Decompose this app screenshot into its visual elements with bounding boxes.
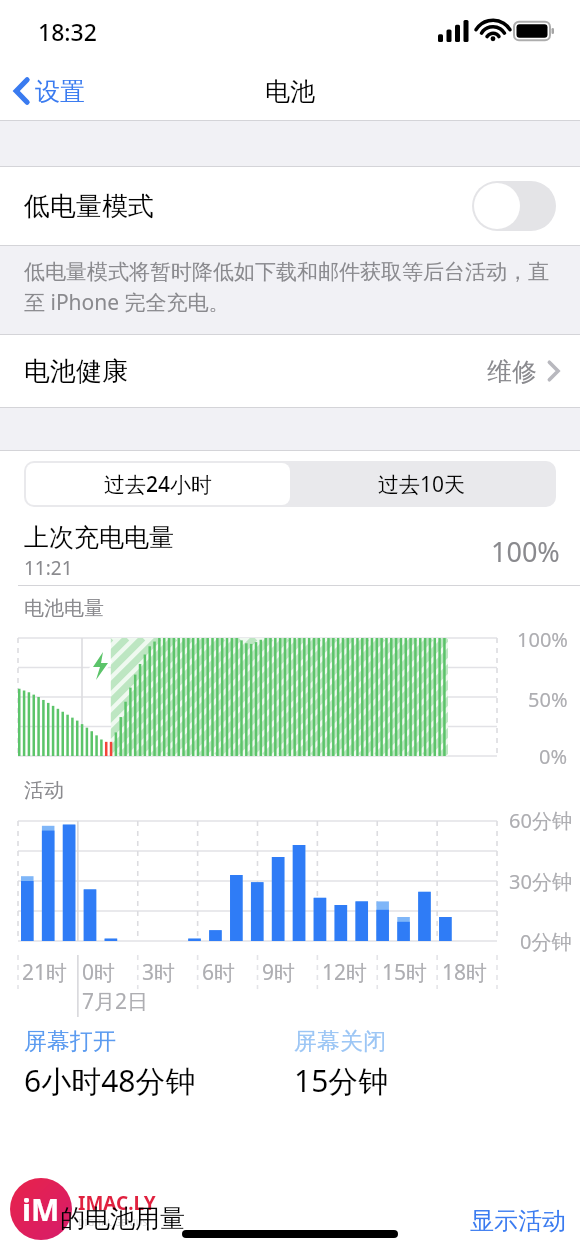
staticText: 电池健康 bbox=[24, 355, 128, 388]
staticText: 活动 bbox=[24, 778, 64, 803]
staticText: 6时 bbox=[202, 958, 236, 987]
staticText: 0分钟 bbox=[520, 928, 572, 955]
staticText: 的电池用量 bbox=[60, 1203, 185, 1234]
staticText: 3时 bbox=[142, 958, 176, 987]
staticText: 30分钟 bbox=[509, 868, 572, 895]
button[interactable]: 电池健康 bbox=[0, 335, 580, 407]
staticText: 电池电量 bbox=[24, 596, 104, 621]
staticText: 0时 bbox=[82, 958, 116, 987]
staticText: 15时 bbox=[382, 958, 428, 987]
staticText: 7月2日 bbox=[82, 987, 149, 1016]
staticText: 显示活动 bbox=[470, 1206, 566, 1236]
staticText: IMAC.LY bbox=[78, 1190, 156, 1216]
button[interactable]: 过去10天 bbox=[290, 463, 554, 505]
staticText: iM bbox=[22, 1189, 60, 1230]
staticText: 上次充电电量 bbox=[24, 522, 174, 553]
staticText: 屏幕关闭 bbox=[294, 1027, 386, 1056]
staticText: 11:21 bbox=[24, 555, 73, 581]
staticText: 屏幕打开 bbox=[24, 1027, 116, 1056]
button[interactable]: 显示活动 bbox=[470, 1206, 566, 1236]
staticText: 21时 bbox=[22, 958, 68, 987]
staticText: 18:32 bbox=[38, 16, 97, 47]
staticText: 过去24小时 bbox=[104, 470, 213, 499]
staticText: 50% bbox=[528, 686, 568, 713]
staticText: 15分钟 bbox=[294, 1060, 389, 1101]
button[interactable]: 设置 bbox=[0, 65, 95, 117]
button[interactable]: 低电量模式开关 bbox=[472, 181, 556, 231]
staticText: 低电量模式 bbox=[24, 190, 154, 223]
staticText: 过去10天 bbox=[378, 470, 466, 499]
staticText: 9时 bbox=[262, 958, 296, 987]
staticText: 18时 bbox=[442, 958, 488, 987]
staticText: 100% bbox=[491, 533, 560, 570]
staticText: 60分钟 bbox=[509, 807, 572, 834]
staticText: 设置 bbox=[35, 76, 85, 107]
staticText: 0% bbox=[539, 743, 568, 770]
staticText: 低电量模式将暂时降低如下载和邮件获取等后台活动，直至 iPhone 完全充电。 bbox=[24, 259, 560, 316]
staticText: 12时 bbox=[322, 958, 368, 987]
staticText: DIGITAL GENIUS bbox=[78, 1216, 148, 1228]
staticText: 100% bbox=[517, 626, 568, 653]
button[interactable]: 过去24小时 bbox=[26, 463, 290, 505]
staticText: 维修 bbox=[487, 356, 537, 387]
staticText: 电池 bbox=[265, 76, 315, 107]
staticText: 6小时48分钟 bbox=[24, 1060, 196, 1101]
button[interactable]: 低电量模式 bbox=[0, 167, 580, 245]
